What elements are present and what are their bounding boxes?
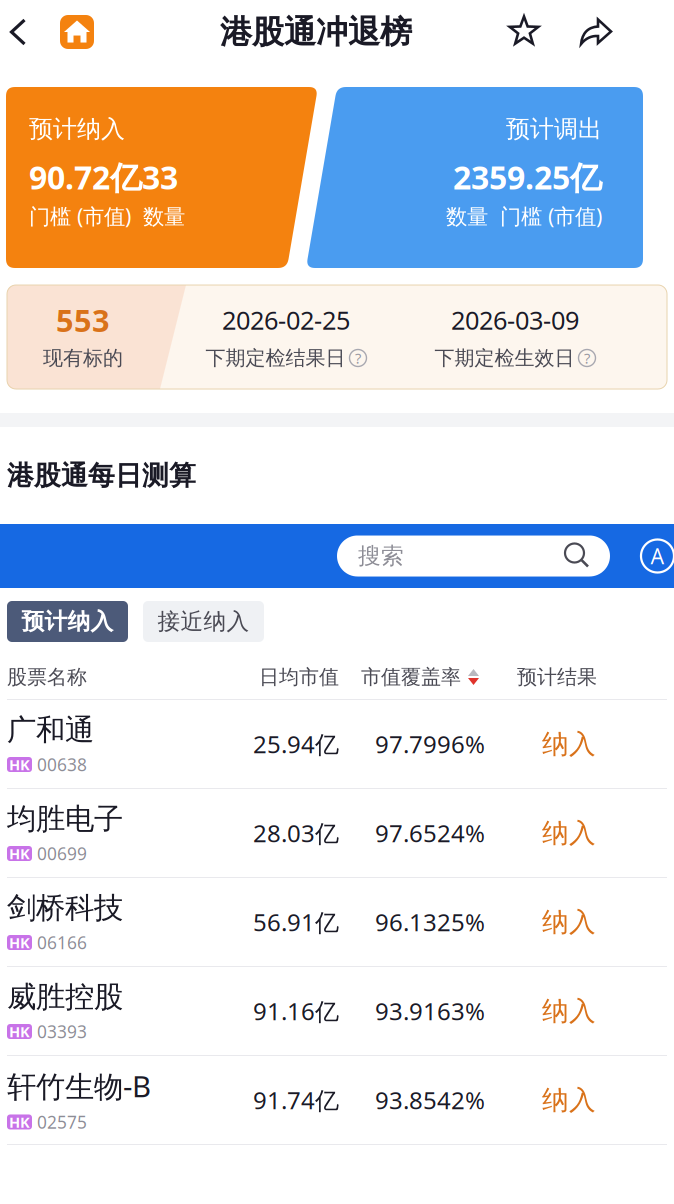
staticText: 93.8542% xyxy=(375,1084,485,1116)
staticText: 预计调出 xyxy=(506,114,602,144)
staticText: 2026-02-25 xyxy=(222,303,350,337)
staticText: 纳入 xyxy=(542,1084,596,1116)
button[interactable]: Share xyxy=(576,7,616,57)
staticText: 下期定检结果日 xyxy=(205,346,345,370)
button[interactable]: 剑桥科技 xyxy=(0,878,674,967)
staticText: 门槛 (市值) 数量 xyxy=(29,202,185,230)
button[interactable]: 广和通 xyxy=(0,700,674,789)
button[interactable]: Home xyxy=(58,7,96,57)
staticText: 90.72亿33 xyxy=(29,156,178,198)
button[interactable]: Back xyxy=(0,7,36,57)
button[interactable]: 均胜电子 xyxy=(0,789,674,878)
staticText: 广和通 xyxy=(7,712,94,748)
staticText: 56.91亿 xyxy=(253,906,339,938)
staticText: 纳入 xyxy=(542,817,596,849)
staticText: 搜索 xyxy=(358,542,404,570)
staticText: 下期定检生效日 xyxy=(434,346,574,370)
staticText: 00699 xyxy=(37,842,87,865)
button[interactable]: 预计纳入 xyxy=(7,601,128,642)
staticText: 均胜电子 xyxy=(7,801,123,837)
button[interactable]: Favorite xyxy=(504,7,544,57)
staticText: 日均市值 xyxy=(259,665,339,689)
staticText: 96.1325% xyxy=(375,906,485,938)
staticText: 预计纳入 xyxy=(21,608,113,635)
button[interactable]: 搜索 xyxy=(337,535,610,576)
staticText: 28.03亿 xyxy=(253,817,339,849)
staticText: 00638 xyxy=(37,753,87,776)
staticText: 02575 xyxy=(37,1110,87,1133)
staticText: HK xyxy=(9,1022,30,1041)
staticText: 25.94亿 xyxy=(253,728,339,760)
staticText: HK xyxy=(9,844,30,863)
staticText: 威胜控股 xyxy=(7,979,123,1015)
staticText: 接近纳入 xyxy=(157,608,249,635)
staticText: ? xyxy=(355,348,361,368)
staticText: 预计结果 xyxy=(517,665,597,689)
staticText: 剑桥科技 xyxy=(7,890,123,926)
button[interactable]: 轩竹生物-B xyxy=(0,1056,674,1145)
button[interactable]: 威胜控股 xyxy=(0,967,674,1056)
staticText: 市值覆盖率 xyxy=(361,665,461,689)
staticText: 纳入 xyxy=(542,995,596,1027)
button[interactable]: 接近纳入 xyxy=(143,601,264,642)
staticText: HK xyxy=(9,755,30,774)
staticText: 97.6524% xyxy=(375,817,485,849)
staticText: 现有标的 xyxy=(43,346,123,370)
staticText: 97.7996% xyxy=(375,728,485,760)
staticText: 纳入 xyxy=(542,906,596,938)
staticText: 2359.25亿 xyxy=(453,156,602,198)
staticText: A xyxy=(650,542,664,570)
staticText: 预计纳入 xyxy=(29,114,125,144)
staticText: HK xyxy=(9,1112,30,1132)
staticText: HK xyxy=(9,933,30,952)
staticText: 553 xyxy=(56,300,110,340)
staticText: 纳入 xyxy=(542,728,596,760)
staticText: ? xyxy=(584,348,590,368)
staticText: 数量 门槛 (市值) xyxy=(446,202,602,230)
staticText: 港股通每日测算 xyxy=(7,459,196,492)
staticText: 2026-03-09 xyxy=(451,303,579,337)
staticText: 股票名称 xyxy=(7,665,87,689)
staticText: 06166 xyxy=(37,931,87,954)
staticText: 93.9163% xyxy=(375,995,485,1027)
staticText: 轩竹生物-B xyxy=(7,1066,151,1105)
staticText: 港股通冲退榜 xyxy=(220,12,412,52)
staticText: 91.16亿 xyxy=(253,995,339,1027)
staticText: 91.74亿 xyxy=(253,1084,339,1116)
staticText: 03393 xyxy=(37,1020,87,1043)
button[interactable]: Account xyxy=(641,539,674,572)
